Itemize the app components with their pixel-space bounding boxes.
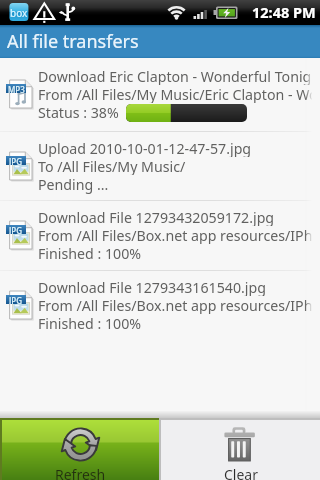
staticText: Status : 38% [38, 103, 119, 122]
button[interactable]: JPG [0, 201, 320, 270]
staticText: Download Eric Clapton - Wonderful Tonigh… [38, 67, 320, 85]
staticText: 12:48 PM [252, 2, 316, 22]
staticText: All file transfers [7, 29, 139, 54]
staticText: From /All Files/Box.net app resources/IP… [38, 296, 320, 314]
button[interactable]: JPG [0, 132, 320, 200]
staticText: Finished : 100% [38, 314, 142, 333]
staticText: From /All Files/My Music/Eric Clapton - … [38, 85, 320, 103]
staticText: From /All Files/Box.net app resources/IP… [38, 226, 320, 244]
staticText: JPG [9, 295, 23, 304]
staticText: Clear [224, 465, 258, 480]
button[interactable]: JPG [0, 271, 320, 340]
staticText: JPG [9, 225, 23, 234]
staticText: To /All Files/My Music/ [38, 157, 186, 175]
staticText: Download File 1279343161540.jpg [38, 278, 266, 296]
button[interactable]: Refresh [2, 420, 159, 480]
staticText: Finished : 100% [38, 244, 142, 263]
staticText: Refresh [55, 465, 106, 480]
button[interactable]: MP3 [0, 58, 320, 131]
staticText: Upload 2010-10-01-12-47-57.jpg [38, 139, 252, 157]
staticText: JPG [9, 156, 23, 165]
staticText: Pending ... [38, 175, 109, 194]
staticText: Download File 12793432059172.jpg [38, 208, 275, 226]
button[interactable]: Clear [161, 420, 320, 480]
staticText: box [10, 6, 28, 17]
staticText: MP3 [8, 84, 25, 93]
